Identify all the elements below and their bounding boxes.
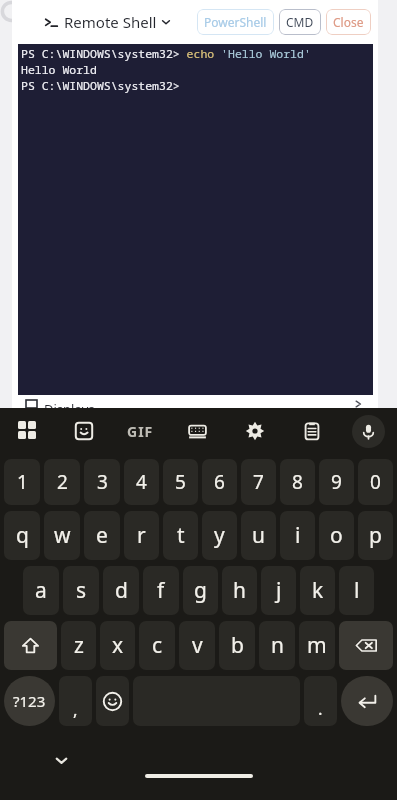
staticText: o (330, 521, 343, 550)
button[interactable]: a (23, 566, 59, 615)
button[interactable]: Backspace (339, 621, 393, 670)
staticText: k (312, 576, 324, 605)
button[interactable]: ?123 (4, 676, 55, 726)
button[interactable]: , (59, 676, 92, 726)
button[interactable]: CMD (279, 9, 321, 35)
button[interactable]: b (219, 621, 255, 670)
button[interactable]: Emoji (96, 676, 129, 726)
button[interactable]: Stickers (56, 408, 112, 454)
button[interactable]: GIF (112, 408, 169, 454)
staticText: 4 (136, 469, 147, 495)
staticText: a (35, 576, 47, 605)
staticText: PowerShell (204, 14, 267, 30)
button[interactable]: 3 (84, 459, 120, 505)
staticText: t (177, 521, 185, 550)
staticText: w (54, 521, 71, 550)
button[interactable]: h (222, 566, 257, 615)
staticText: f (157, 576, 165, 605)
staticText: z (74, 631, 84, 660)
button[interactable]: y (202, 511, 237, 560)
button[interactable]: d (103, 566, 139, 615)
staticText: i (295, 521, 301, 550)
button[interactable]: Close (326, 9, 371, 35)
button[interactable]: Remote Shell (42, 8, 173, 36)
button[interactable]: o (319, 511, 354, 560)
staticText: r (137, 521, 146, 550)
staticText: h (233, 576, 246, 605)
button[interactable]: Clipboard (283, 408, 340, 454)
button[interactable]: . (304, 676, 337, 726)
button[interactable]: j (261, 566, 296, 615)
button[interactable]: e (84, 511, 120, 560)
staticText: d (115, 576, 128, 605)
button[interactable]: Apps (0, 408, 56, 454)
button[interactable]: Keyboard (169, 408, 226, 454)
staticText: . (318, 697, 323, 720)
button[interactable]: r (124, 511, 159, 560)
button[interactable]: 5 (163, 459, 198, 505)
button[interactable]: w (44, 511, 80, 560)
button[interactable]: g (183, 566, 218, 615)
button[interactable]: 6 (202, 459, 237, 505)
staticText: , (73, 698, 78, 721)
button[interactable]: Voice input (340, 408, 397, 454)
staticText: v (192, 631, 203, 660)
button[interactable]: l (339, 566, 374, 615)
staticText: 5 (175, 469, 186, 495)
staticText: 7 (253, 469, 264, 495)
button[interactable]: n (259, 621, 295, 670)
staticText: s (76, 576, 87, 605)
staticText: p (369, 521, 382, 550)
staticText: m (307, 631, 327, 660)
staticText: 1 (17, 469, 28, 495)
button[interactable]: q (4, 511, 40, 560)
staticText: ?123 (13, 691, 46, 711)
button[interactable]: u (241, 511, 276, 560)
button[interactable]: f (143, 566, 179, 615)
staticText: PS C:\WINDOWS\system32> (21, 78, 180, 94)
staticText: j (276, 576, 282, 605)
button[interactable]: m (299, 621, 335, 670)
staticText: u (252, 521, 265, 550)
staticText: e (96, 521, 108, 550)
staticText: g (194, 576, 207, 605)
button[interactable]: k (300, 566, 335, 615)
button[interactable]: 7 (241, 459, 276, 505)
button[interactable]: 9 (319, 459, 354, 505)
button[interactable]: 4 (124, 459, 159, 505)
staticText: GIF (127, 422, 154, 441)
button[interactable]: 8 (280, 459, 315, 505)
button[interactable]: PowerShell (197, 9, 274, 35)
button[interactable]: Shift (4, 621, 57, 670)
staticText: Hello World (21, 62, 97, 78)
button[interactable]: i (280, 511, 315, 560)
staticText: Displays (44, 400, 95, 408)
staticText: x (112, 631, 124, 660)
button[interactable]: 1 (4, 459, 40, 505)
staticText: l (354, 576, 360, 605)
button[interactable]: v (179, 621, 215, 670)
staticText: 8 (292, 469, 303, 495)
button[interactable]: c (139, 621, 175, 670)
staticText: 6 (214, 469, 225, 495)
button[interactable]: Displays (12, 400, 378, 408)
staticText: 9 (331, 469, 342, 495)
button[interactable]: s (63, 566, 99, 615)
staticText: Remote Shell (64, 12, 157, 32)
staticText: PS C:\WINDOWS\system32> echo 'Hello Worl… (21, 46, 311, 62)
staticText: 2 (57, 469, 68, 495)
button[interactable]: z (61, 621, 96, 670)
button[interactable]: 2 (44, 459, 80, 505)
staticText: q (16, 521, 29, 550)
button[interactable]: x (100, 621, 135, 670)
staticText: y (214, 521, 225, 550)
button[interactable]: t (163, 511, 198, 560)
button[interactable]: Settings (226, 408, 283, 454)
button[interactable]: Hide keyboard (46, 745, 76, 775)
button[interactable]: Enter (341, 676, 393, 726)
staticText: CMD (286, 14, 314, 30)
staticText: 3 (97, 469, 108, 495)
button[interactable]: p (358, 511, 393, 560)
button[interactable]: 0 (358, 459, 393, 505)
